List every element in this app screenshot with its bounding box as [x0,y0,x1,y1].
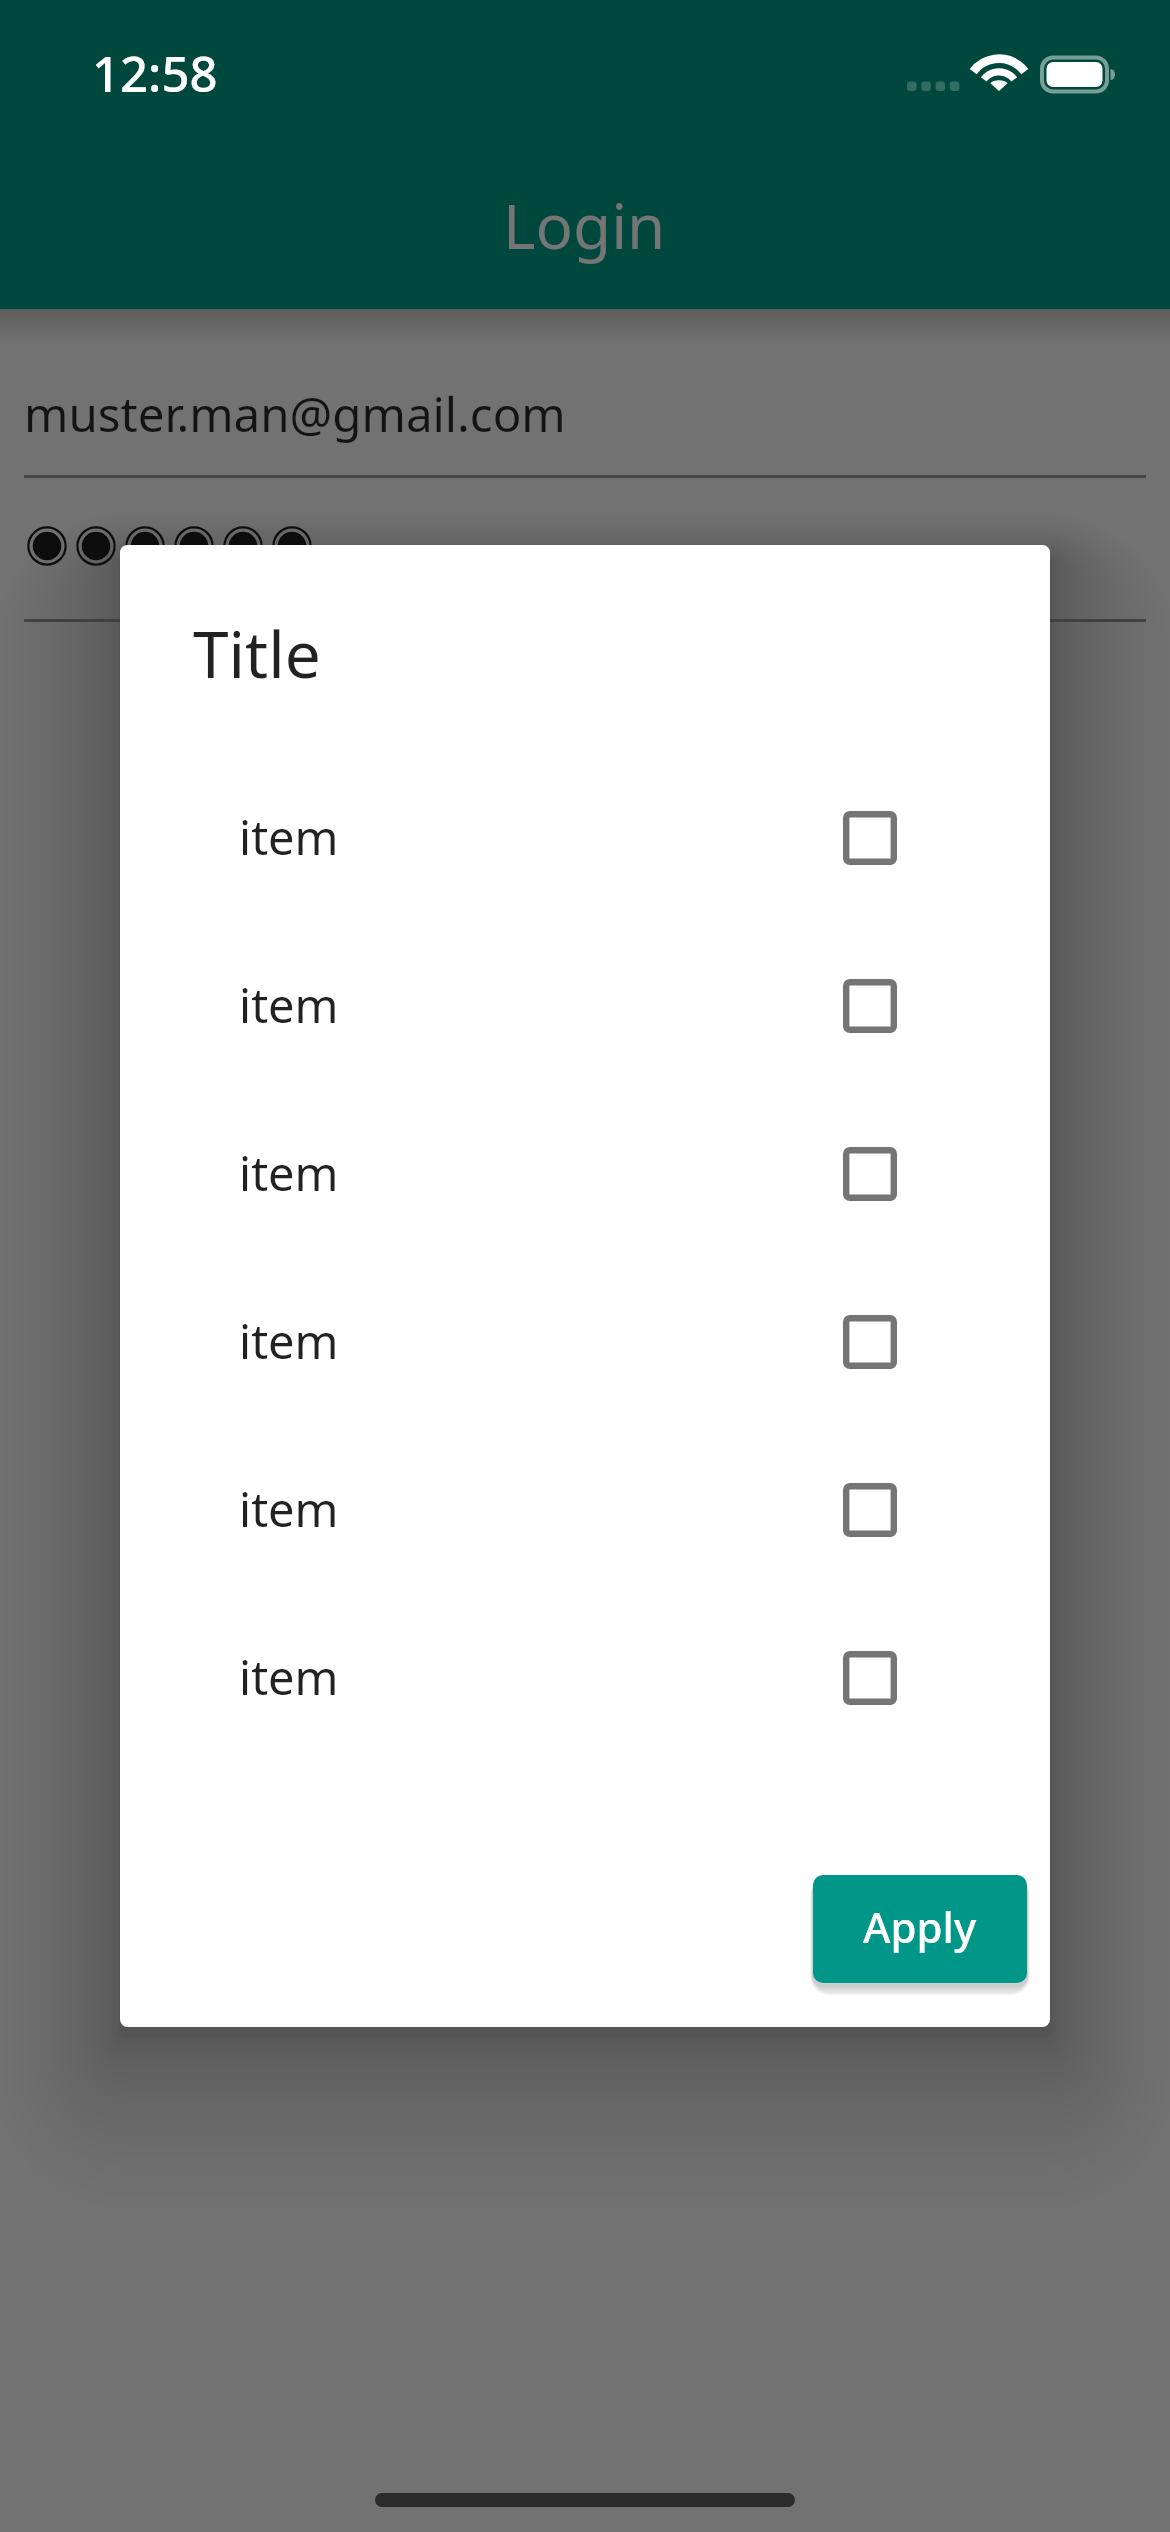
button[interactable]: item [120,939,1050,1073]
staticText: Title [193,610,321,697]
staticText: item [239,973,339,1037]
other: Home [375,2493,795,2507]
staticText: item [239,1309,339,1373]
other: Signal, Wi-Fi and battery status [0,0,1170,150]
button[interactable]: item [120,1443,1050,1577]
button[interactable]: item [120,1275,1050,1409]
staticText: item [239,805,339,869]
button[interactable]: item [120,1107,1050,1241]
staticText: Apply [863,1898,977,1955]
staticText: item [239,1477,339,1541]
button[interactable]: item [120,1611,1050,1745]
staticText: item [239,1645,339,1709]
staticText: Login [503,183,666,267]
staticText: muster.man@gmail.com [24,381,566,446]
staticText: item [239,1141,339,1205]
button[interactable]: item [120,771,1050,905]
button[interactable]: Apply [813,1875,1027,1983]
staticText: 12:58 [92,40,218,107]
